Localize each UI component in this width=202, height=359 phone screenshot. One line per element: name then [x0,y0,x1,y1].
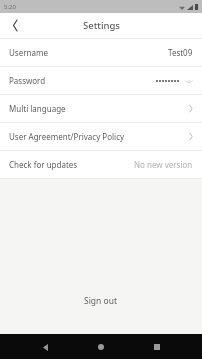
button[interactable]: Username [0,39,202,66]
button[interactable]: Home [90,336,112,358]
button[interactable]: Multi language [0,95,202,122]
staticText: Sign out [84,295,118,307]
staticText: Username [9,47,48,58]
staticText: Settings [83,19,120,32]
staticText: Password [9,75,46,86]
staticText: Test09 [168,47,193,58]
staticText: No new version [134,159,193,170]
staticText: 5:20 [4,3,16,11]
button[interactable]: Sign out [72,291,130,311]
button[interactable]: Recent apps [146,336,168,358]
button[interactable]: Check for updates [0,151,202,178]
button[interactable]: Show password [184,76,193,85]
button[interactable]: Password [0,67,202,94]
staticText: User Agreement/Privacy Policy [9,131,125,142]
button[interactable]: Back [34,336,56,358]
staticText: Check for updates [9,159,78,170]
button[interactable]: User Agreement/Privacy Policy [0,123,202,150]
button[interactable]: Back [0,13,30,38]
staticText: Multi language [9,103,66,114]
